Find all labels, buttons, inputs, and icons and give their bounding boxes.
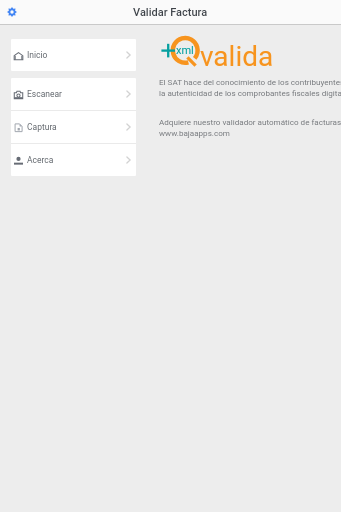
button[interactable]: Acerca: [11, 144, 136, 176]
button[interactable]: Settings: [3, 3, 21, 21]
staticText: xml: [176, 44, 194, 57]
staticText: Escanear: [27, 89, 62, 99]
button[interactable]: Captura: [11, 111, 136, 143]
staticText: www.bajaapps.com: [159, 128, 230, 137]
staticText: Validar Factura: [133, 6, 208, 19]
staticText: valida: [200, 40, 274, 73]
staticText: la autenticidad de los comprobantes fisc…: [159, 88, 341, 97]
staticText: Inicio: [27, 50, 48, 60]
button[interactable]: Inicio: [11, 39, 136, 71]
staticText: Captura: [27, 122, 57, 132]
staticText: El SAT hace del conocimiento de los cont…: [159, 77, 341, 86]
button[interactable]: Escanear: [11, 78, 136, 110]
staticText: Acerca: [27, 155, 54, 165]
staticText: Adquiere nuestro validador automático de…: [159, 117, 341, 126]
